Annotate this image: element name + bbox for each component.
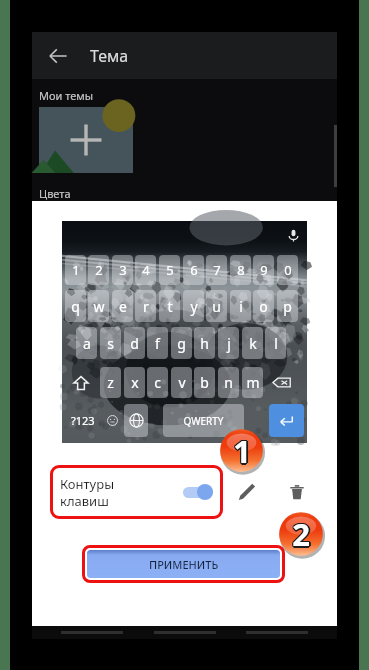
staticText: 2 [292,513,310,555]
button[interactable]: w [88,290,109,322]
button[interactable]: Back [40,38,76,74]
button[interactable]: f [147,327,168,359]
staticText: b [200,373,209,392]
button[interactable]: 4 [135,255,156,285]
staticText: w [93,297,105,316]
button[interactable]: 6 [183,255,204,285]
button[interactable]: 2 [88,255,109,285]
staticText: 2 [293,514,311,556]
staticText: 1 [233,431,251,473]
button[interactable]: y [183,290,204,322]
staticText: 1 [234,430,252,472]
button[interactable]: u [206,290,227,322]
button[interactable]: z [100,367,121,398]
staticText: 1 [232,431,250,473]
staticText: q [71,297,80,316]
staticText: 5 [166,261,174,279]
staticText: 1 [233,432,251,474]
button[interactable]: i [230,290,251,322]
staticText: l [274,334,278,353]
button[interactable]: Navigation button [244,626,310,639]
button[interactable]: Navigation button [152,626,218,639]
button[interactable]: m [242,367,263,398]
staticText: QWERTY [183,414,224,428]
staticText: 8 [237,261,245,279]
button[interactable]: Language [124,404,148,437]
staticText: 1 [72,261,80,279]
button[interactable]: o [253,290,274,322]
button[interactable]: Delete [282,477,312,507]
button[interactable]: n [218,367,239,398]
staticText: 2 [291,512,309,554]
button[interactable]: Edit [232,477,262,507]
staticText: 2 [95,261,103,279]
staticText: 1 [233,429,251,471]
staticText: 2 [291,513,309,555]
staticText: u [212,297,221,316]
staticText: 1 [232,429,250,471]
staticText: 1 [233,429,251,471]
staticText: 9 [260,261,268,279]
button[interactable]: Shift [65,367,97,398]
staticText: g [177,334,186,353]
button[interactable]: Voice input [287,229,300,242]
button[interactable]: Toggle key outlines [183,484,213,500]
button[interactable]: QWERTY [163,404,244,437]
staticText: 2 [294,513,312,555]
staticText: 1 [232,430,250,472]
staticText: Контуры клавиш [60,475,115,510]
button[interactable]: 5 [159,255,180,285]
button[interactable]: l [265,327,286,359]
button[interactable]: k [242,327,263,359]
staticText: Тема [90,45,129,67]
staticText: ?123 [71,413,95,428]
button[interactable]: 9 [253,255,274,285]
button[interactable]: Emoji [103,404,121,437]
button[interactable]: a [76,327,97,359]
staticText: j [227,334,231,353]
button[interactable]: v [171,367,192,398]
staticText: 2 [292,512,310,554]
staticText: 2 [292,512,310,554]
staticText: 0 [284,261,292,279]
button[interactable]: Backspace [265,367,297,398]
staticText: 1 [234,431,252,473]
staticText: n [224,373,233,392]
button[interactable]: b [194,367,215,398]
staticText: 1 [233,430,251,472]
button[interactable]: t [159,290,180,322]
button[interactable]: g [171,327,192,359]
button[interactable]: 1 [65,255,86,285]
button[interactable]: h [194,327,215,359]
staticText: x [131,373,139,392]
button[interactable]: Контуры клавиш [60,473,213,511]
button[interactable]: Navigation button [59,626,125,639]
button[interactable]: c [147,367,168,398]
staticText: 7 [213,261,221,279]
button[interactable]: Add theme [39,107,133,173]
button[interactable]: ПРИМЕНИТЬ [87,550,280,578]
staticText: Мои темы [39,88,94,103]
button[interactable]: 0 [277,255,298,285]
button[interactable]: p [277,290,298,322]
button[interactable]: r [135,290,156,322]
staticText: 1 [232,430,250,472]
button[interactable]: e [112,290,133,322]
staticText: 1 [235,430,253,472]
button[interactable]: j [218,327,239,359]
button[interactable]: q [65,290,86,322]
staticText: v [178,373,186,392]
button[interactable]: Enter [269,404,304,437]
button[interactable]: 8 [230,255,251,285]
button[interactable]: 7 [206,255,227,285]
button[interactable]: d [124,327,145,359]
staticText: s [107,334,114,353]
button[interactable]: Symbols [70,404,96,437]
staticText: h [200,334,209,353]
button[interactable]: s [100,327,121,359]
button[interactable]: x [124,367,145,398]
staticText: 4 [142,261,150,279]
staticText: 2 [291,513,309,555]
staticText: 3 [119,261,127,279]
button[interactable]: 3 [112,255,133,285]
